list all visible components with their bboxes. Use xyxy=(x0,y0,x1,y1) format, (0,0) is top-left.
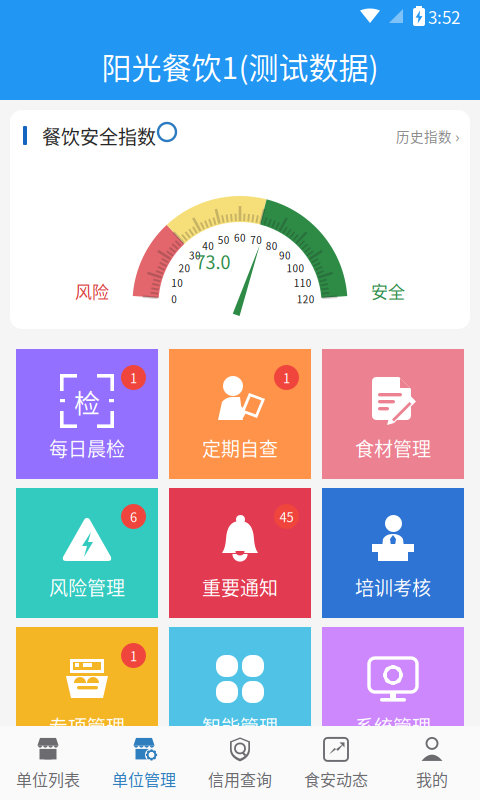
button[interactable]: 培训考核 xyxy=(322,488,464,618)
button[interactable]: 单位列表 xyxy=(0,726,96,800)
staticText: 历史指数 xyxy=(396,126,452,146)
staticText: 安全 xyxy=(371,279,405,303)
staticText: 1 xyxy=(130,368,137,387)
staticText: › xyxy=(452,125,460,147)
staticText: 40 xyxy=(202,238,214,253)
staticText: 我的 xyxy=(416,767,448,791)
staticText: 10 xyxy=(171,275,183,290)
staticText: 60 xyxy=(234,230,246,245)
staticText: 45 xyxy=(279,507,293,526)
button[interactable]: 检 xyxy=(16,349,158,479)
button[interactable]: 食安动态 xyxy=(288,726,384,800)
button[interactable]: 定期自查 xyxy=(169,349,311,479)
staticText: 培训考核 xyxy=(355,573,431,601)
button[interactable]: 我的 xyxy=(384,726,480,800)
staticText: 风险管理 xyxy=(49,573,125,601)
staticText: 智能管理 xyxy=(202,712,278,740)
staticText: 50 xyxy=(218,232,230,247)
staticText: 食安动态 xyxy=(304,767,368,791)
staticText: 90 xyxy=(279,248,291,262)
staticText: 100 xyxy=(287,261,305,275)
button[interactable]: 搜索 xyxy=(156,121,186,151)
staticText: 20 xyxy=(178,261,190,275)
button[interactable]: 风险管理 xyxy=(16,488,158,618)
staticText: 30 xyxy=(189,248,201,262)
staticText: 70 xyxy=(250,232,262,247)
staticText: 120 xyxy=(297,292,315,306)
staticText: 阳光餐饮1(测试数据) xyxy=(101,44,378,88)
staticText: 0 xyxy=(171,292,177,306)
button[interactable]: 专项管理 xyxy=(16,627,158,757)
staticText: 重要通知 xyxy=(202,573,278,601)
staticText: 73.0 xyxy=(195,248,230,275)
button[interactable]: 系统管理 xyxy=(322,627,464,757)
button[interactable]: 智能管理 xyxy=(169,627,311,757)
staticText: 检 xyxy=(74,383,100,421)
staticText: 1 xyxy=(283,368,290,387)
staticText: 专项管理 xyxy=(49,712,125,740)
staticText: 1 xyxy=(130,646,137,665)
staticText: 系统管理 xyxy=(355,712,431,740)
staticText: 80 xyxy=(266,238,278,253)
staticText: 食材管理 xyxy=(355,434,431,462)
staticText: 餐饮安全指数 xyxy=(42,122,156,150)
staticText: 单位管理 xyxy=(112,767,176,791)
button[interactable]: 单位管理 xyxy=(96,726,192,800)
button[interactable]: 信用查询 xyxy=(192,726,288,800)
button[interactable]: 重要通知 xyxy=(169,488,311,618)
staticText: 信用查询 xyxy=(208,767,272,791)
button[interactable]: 历史指数 xyxy=(350,124,460,148)
staticText: 每日晨检 xyxy=(49,434,125,462)
staticText: 单位列表 xyxy=(16,767,80,791)
staticText: 3:52 xyxy=(428,4,460,29)
staticText: 定期自查 xyxy=(202,434,278,462)
staticText: 风险 xyxy=(75,279,109,303)
staticText: 6 xyxy=(130,507,137,526)
button[interactable]: 食材管理 xyxy=(322,349,464,479)
staticText: 110 xyxy=(294,275,312,290)
